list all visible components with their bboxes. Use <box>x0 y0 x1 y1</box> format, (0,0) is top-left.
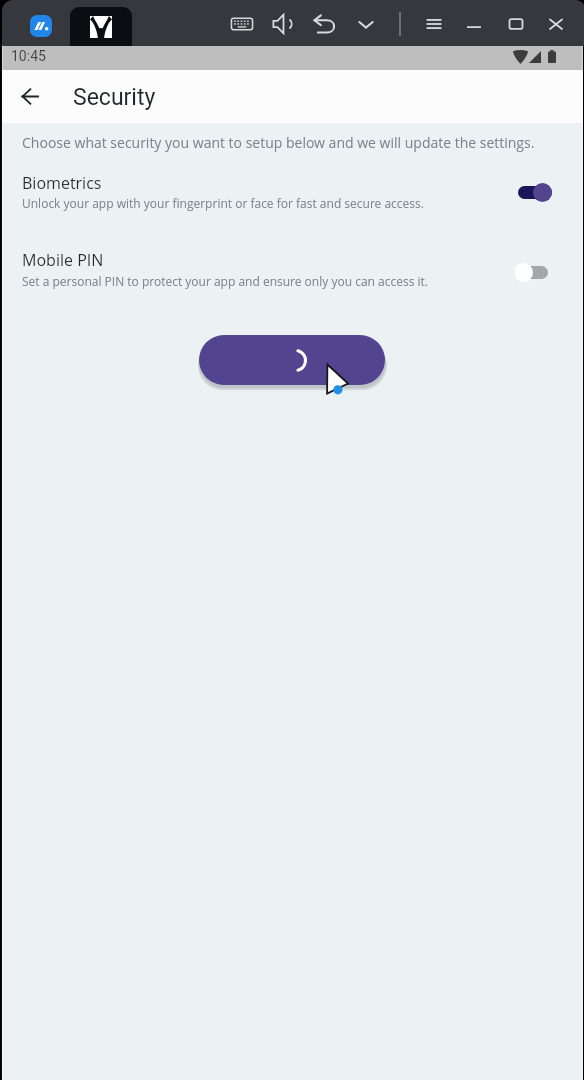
staticText: Unlock your app with your fingerprint or… <box>22 195 424 211</box>
staticText: Security <box>73 84 156 111</box>
button[interactable]: Maximize <box>502 10 530 38</box>
button[interactable]: Disabled <box>514 260 548 284</box>
button[interactable]: Back <box>12 78 48 114</box>
button[interactable]: Save <box>199 335 385 385</box>
button[interactable]: Volume <box>269 10 297 38</box>
button[interactable]: More <box>352 10 380 38</box>
staticText: Biometrics <box>22 172 102 194</box>
button[interactable]: Back <box>310 10 338 38</box>
button[interactable]: Emulator app <box>30 15 52 37</box>
button[interactable]: Enabled <box>518 180 552 204</box>
button[interactable]: Minimize <box>460 10 488 38</box>
button[interactable]: Device tab <box>70 7 132 46</box>
button[interactable]: Keyboard <box>228 10 256 38</box>
staticText: Choose what security you want to setup b… <box>22 133 535 152</box>
button[interactable]: Disabled <box>2 248 583 296</box>
staticText: Mobile PIN <box>22 249 104 271</box>
button[interactable]: Menu <box>420 10 448 38</box>
staticText: 10:45 <box>11 48 46 64</box>
staticText: Set a personal PIN to protect your app a… <box>22 273 428 289</box>
button[interactable]: Enabled <box>2 168 583 216</box>
button[interactable]: Close <box>542 10 570 38</box>
